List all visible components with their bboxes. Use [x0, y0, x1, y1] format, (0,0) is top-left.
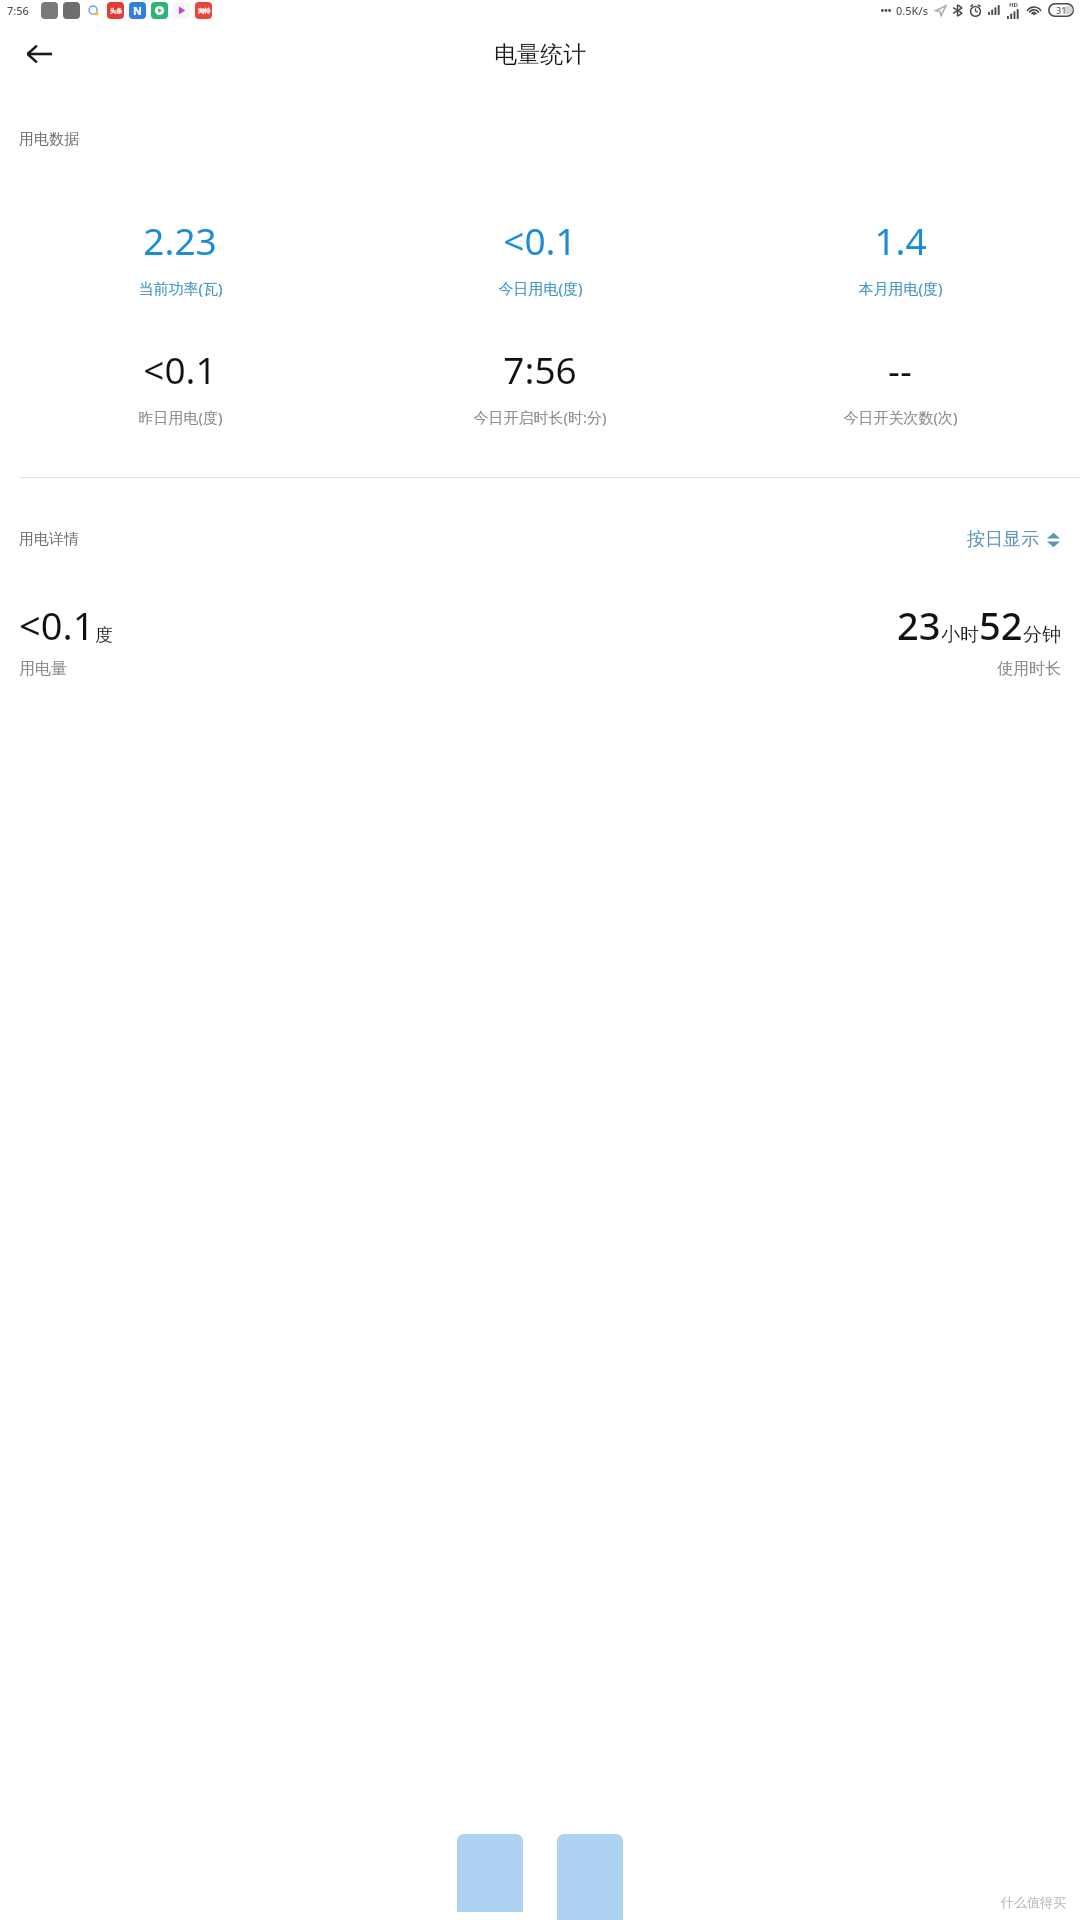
- button[interactable]: 2.23: [0, 215, 360, 298]
- staticText: 度: [95, 624, 113, 647]
- staticText: 2.23: [143, 215, 217, 265]
- staticText: 23: [897, 599, 941, 651]
- staticText: 分钟: [1023, 623, 1061, 647]
- button[interactable]: 23: [897, 599, 1061, 679]
- staticText: N: [133, 3, 142, 18]
- staticText: 7:56: [7, 3, 29, 18]
- staticText: 7:56: [503, 344, 577, 394]
- staticText: 今日开关次数(次): [843, 407, 958, 427]
- staticText: 今日开启时长(时:分): [473, 407, 607, 427]
- button[interactable]: --: [720, 344, 1080, 427]
- staticText: 使用时长: [997, 659, 1061, 679]
- staticText: <0.1: [503, 215, 577, 265]
- button[interactable]: Back: [12, 27, 66, 81]
- staticText: 小时: [941, 623, 979, 647]
- staticText: 当前功率(瓦): [138, 278, 223, 298]
- button[interactable]: <0.1: [360, 215, 720, 298]
- staticText: --: [888, 344, 912, 394]
- button[interactable]: <0.1: [19, 599, 113, 679]
- staticText: 用电量: [19, 659, 67, 679]
- staticText: 淘特: [198, 7, 210, 15]
- staticText: 0.5K/s: [896, 3, 929, 18]
- button[interactable]: 按日显示: [967, 528, 1061, 551]
- staticText: 昨日用电(度): [138, 407, 223, 427]
- staticText: 今日用电(度): [498, 278, 583, 298]
- staticText: 1.4: [874, 215, 927, 265]
- staticText: 按日显示: [967, 528, 1039, 551]
- button[interactable]: 1.4: [720, 215, 1080, 298]
- staticText: <0.1: [19, 599, 95, 651]
- button[interactable]: <0.1: [0, 344, 360, 427]
- staticText: 用电详情: [19, 530, 79, 549]
- staticText: <0.1: [143, 344, 217, 394]
- staticText: 52: [979, 599, 1023, 651]
- staticText: 电量统计: [494, 40, 586, 69]
- button[interactable]: 7:56: [360, 344, 720, 427]
- staticText: 什么值得买: [1001, 1894, 1066, 1910]
- staticText: 本月用电(度): [858, 278, 943, 298]
- staticText: 用电数据: [19, 130, 79, 149]
- staticText: HD: [1009, 1, 1018, 9]
- staticText: 头条: [110, 7, 122, 15]
- staticText: 31: [1056, 4, 1067, 16]
